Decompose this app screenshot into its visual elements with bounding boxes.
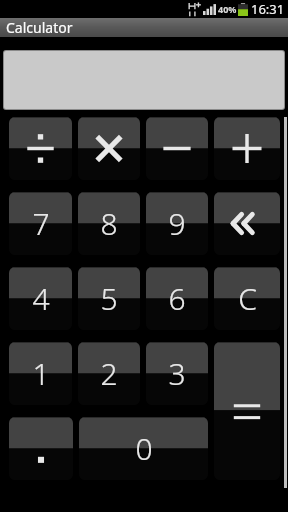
button[interactable]: C <box>214 267 280 330</box>
button[interactable]: Minus <box>146 117 208 180</box>
staticText: 8 <box>100 203 118 244</box>
button[interactable]: 9 <box>146 192 208 255</box>
staticText: 0 <box>135 428 153 469</box>
staticText: 6 <box>168 278 186 319</box>
staticText: 7 <box>32 203 50 244</box>
button[interactable]: 7 <box>9 192 72 255</box>
staticText: C <box>238 278 257 319</box>
staticText: 4 <box>32 278 50 319</box>
button[interactable]: 2 <box>78 342 140 405</box>
staticText: 3 <box>168 353 186 394</box>
button[interactable]: 3 <box>146 342 208 405</box>
button[interactable]: Multiply <box>78 117 140 180</box>
button[interactable]: 4 <box>9 267 72 330</box>
button[interactable]: 5 <box>78 267 140 330</box>
button[interactable]: Decimal point <box>9 417 73 480</box>
button[interactable]: 6 <box>146 267 208 330</box>
button[interactable]: 0 <box>79 417 208 480</box>
staticText: 5 <box>100 278 118 319</box>
button[interactable]: 8 <box>78 192 140 255</box>
button[interactable]: Backspace <box>214 192 280 255</box>
button[interactable]: 1 <box>9 342 72 405</box>
staticText: 2 <box>100 353 118 394</box>
button[interactable]: Divide <box>9 117 72 180</box>
staticText: 1 <box>32 353 50 394</box>
button[interactable]: Plus <box>214 117 280 180</box>
staticText: 16:31 <box>251 0 285 18</box>
staticText: Calculator <box>6 18 73 37</box>
button[interactable]: Equals <box>214 342 280 480</box>
staticText: 9 <box>168 203 186 244</box>
staticText: 40% <box>218 3 237 15</box>
